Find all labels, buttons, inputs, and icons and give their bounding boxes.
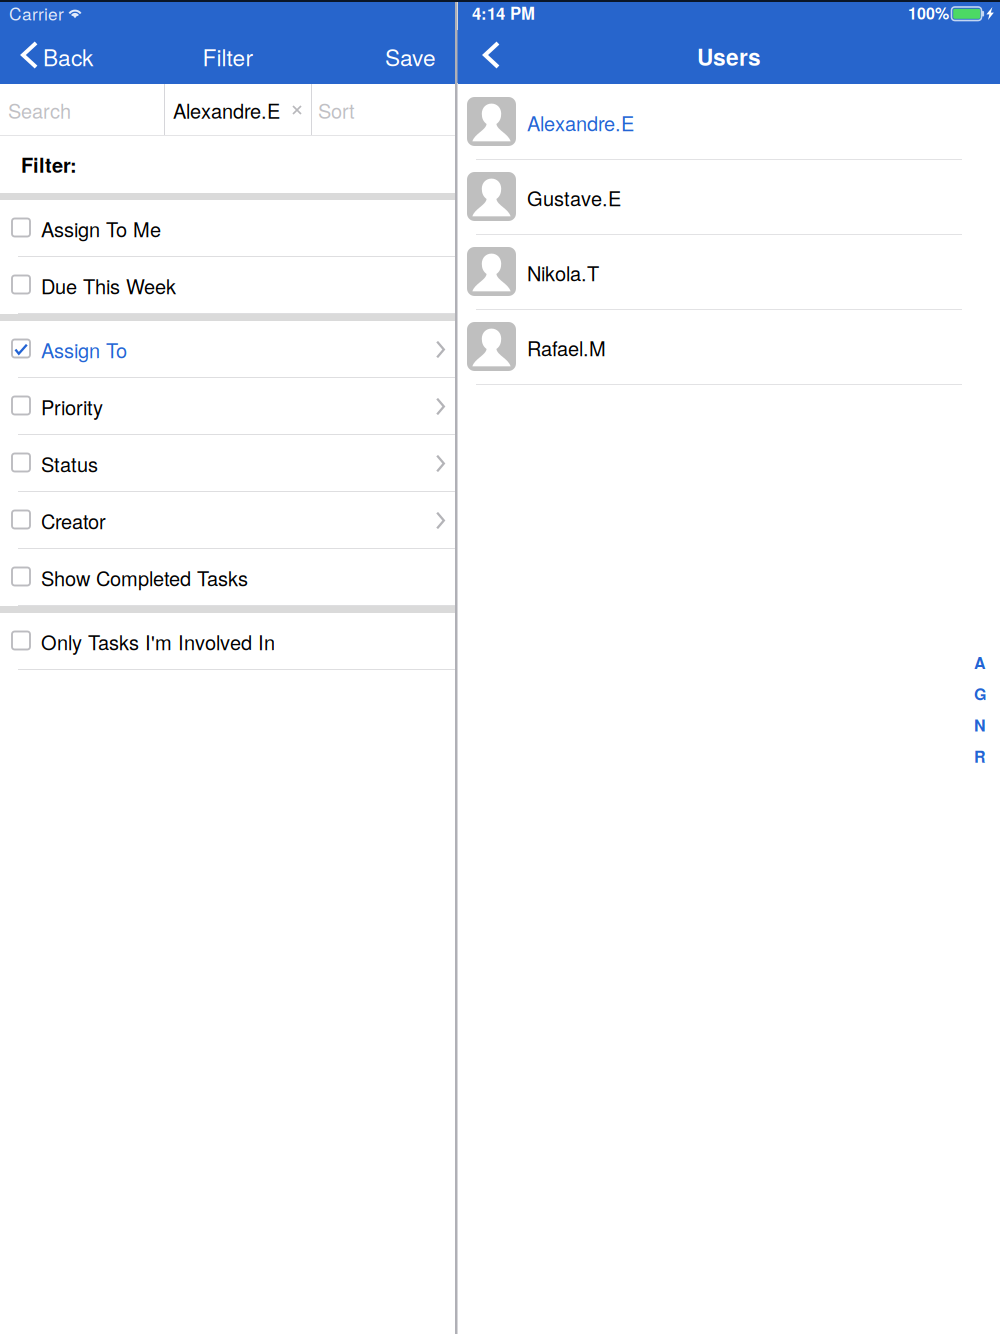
staticText: Users: [697, 40, 761, 73]
staticText: Alexandre.E: [173, 96, 280, 124]
staticText: Gustave.E: [527, 183, 621, 212]
button[interactable]: Back: [0, 30, 120, 83]
staticText: Priority: [41, 392, 103, 421]
button[interactable]: Back: [458, 30, 528, 83]
staticText: 4:14 PM: [472, 1, 535, 25]
button[interactable]: Creator: [0, 492, 456, 549]
staticText: Rafael.M: [527, 333, 606, 362]
button[interactable]: Save: [358, 30, 458, 83]
button[interactable]: Nikola.T: [458, 235, 1000, 310]
staticText: Status: [41, 449, 98, 478]
staticText: Only Tasks I'm Involved In: [41, 627, 275, 656]
staticText: Save: [385, 40, 436, 73]
staticText: Creator: [41, 506, 106, 535]
staticText: 100%: [908, 1, 949, 24]
staticText: Due This Week: [41, 271, 176, 300]
button[interactable]: Status: [0, 435, 456, 492]
button[interactable]: Section index: [969, 656, 991, 766]
staticText: Alexandre.E: [527, 108, 634, 137]
staticText: Back: [43, 40, 93, 73]
button[interactable]: Alexandre.E: [165, 84, 311, 136]
button[interactable]: Only Tasks I'm Involved In: [0, 613, 456, 670]
button[interactable]: Sort: [312, 84, 456, 136]
staticText: Sort: [318, 96, 355, 124]
staticText: N: [974, 713, 986, 736]
button[interactable]: Search: [0, 84, 164, 136]
button[interactable]: Assign To: [0, 321, 456, 378]
button[interactable]: Due This Week: [0, 257, 456, 314]
button[interactable]: Alexandre.E: [458, 85, 1000, 160]
button[interactable]: Gustave.E: [458, 160, 1000, 235]
staticText: Assign To Me: [41, 214, 161, 243]
staticText: G: [974, 682, 986, 705]
staticText: Show Completed Tasks: [41, 563, 248, 592]
staticText: R: [974, 745, 986, 767]
staticText: A: [974, 651, 986, 674]
staticText: Assign To: [41, 335, 127, 364]
staticText: Nikola.T: [527, 258, 599, 287]
button[interactable]: Assign To Me: [0, 200, 456, 257]
staticText: Filter: [202, 40, 253, 73]
button[interactable]: Priority: [0, 378, 456, 435]
button[interactable]: Show Completed Tasks: [0, 549, 456, 606]
staticText: Search: [8, 96, 71, 124]
staticText: Carrier: [9, 1, 64, 25]
button[interactable]: Rafael.M: [458, 310, 1000, 385]
staticText: Filter:: [21, 150, 77, 179]
